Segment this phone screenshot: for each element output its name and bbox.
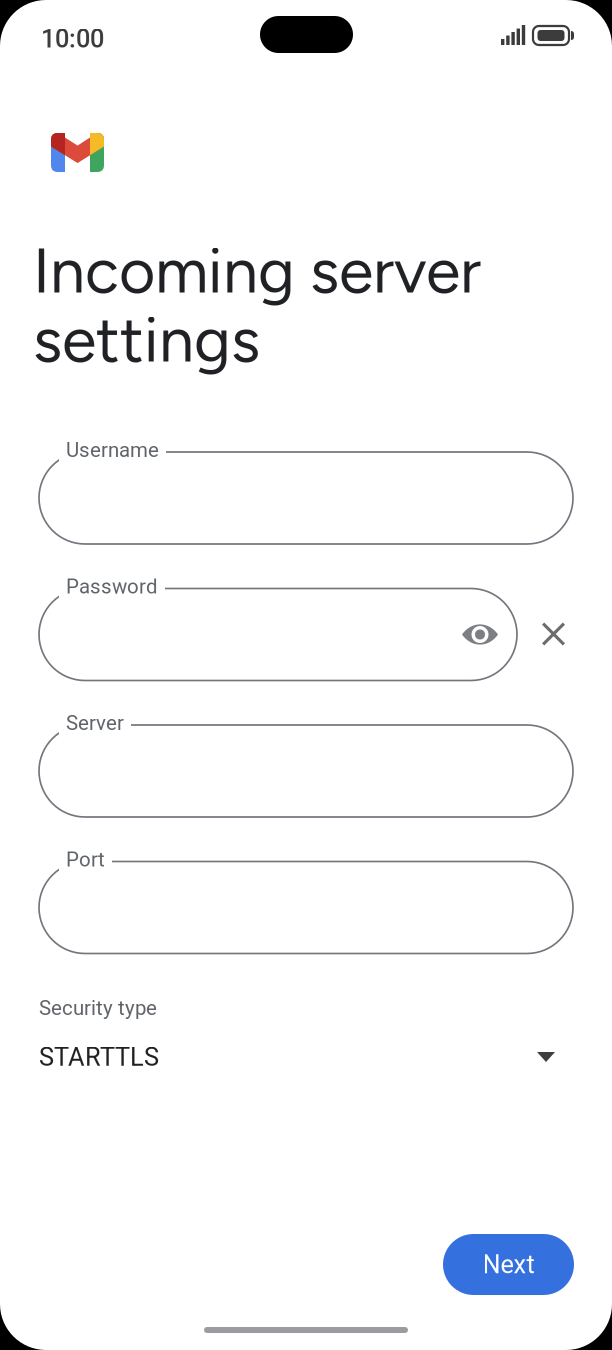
staticText: Port (66, 847, 105, 871)
button[interactable]: Clear password (542, 622, 565, 645)
staticText: Security type (39, 996, 157, 1020)
staticText: Incoming server (33, 233, 481, 308)
staticText: Server (66, 711, 124, 735)
staticText: Username (66, 438, 159, 462)
staticText: Password (66, 574, 158, 598)
staticText: Next (482, 1250, 534, 1279)
button[interactable]: Next (443, 1234, 574, 1295)
staticText: 10:00 (41, 24, 104, 54)
button[interactable]: Show password (462, 622, 498, 646)
button[interactable]: STARTTLS (39, 1033, 573, 1081)
staticText: settings (33, 302, 260, 377)
staticText: STARTTLS (39, 1042, 159, 1072)
